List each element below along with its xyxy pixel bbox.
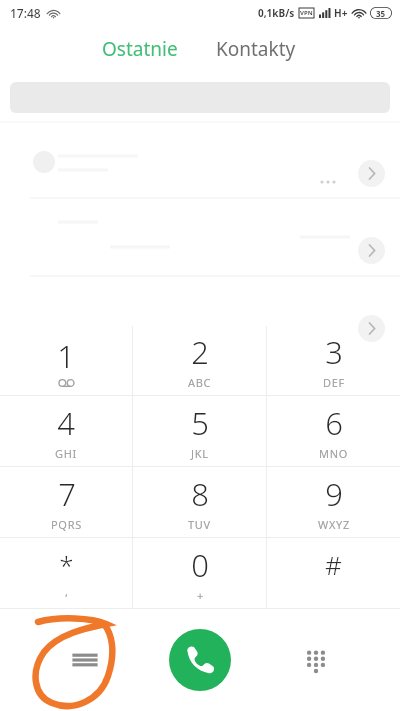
staticText: GHI — [55, 446, 77, 461]
staticText: DEF — [323, 375, 345, 390]
staticText: Ostatnie — [102, 36, 178, 62]
button[interactable]: 4 — [0, 396, 132, 466]
button[interactable]: # — [267, 538, 400, 608]
button[interactable]: Ostatnie — [96, 30, 184, 68]
staticText: 1 — [57, 335, 75, 377]
staticText: # — [325, 547, 342, 582]
staticText: 0 — [191, 544, 209, 586]
button[interactable]: 8 — [133, 467, 266, 537]
staticText: TUV — [188, 517, 211, 532]
button[interactable]: Call — [169, 629, 231, 691]
button[interactable]: Keypad — [288, 632, 344, 688]
staticText: * — [59, 547, 74, 582]
staticText: WXYZ — [318, 517, 350, 532]
staticText: 5 — [191, 402, 209, 444]
button[interactable]: 1 — [0, 326, 132, 395]
button[interactable]: Open — [358, 315, 385, 342]
button[interactable]: 2 — [133, 326, 266, 395]
staticText: 4 — [57, 402, 75, 444]
button[interactable]: 9 — [267, 467, 400, 537]
staticText: 35 — [376, 8, 386, 19]
staticText: 9 — [325, 473, 343, 515]
button[interactable]: 3 — [267, 326, 400, 395]
staticText: 7 — [58, 473, 76, 515]
button[interactable]: 5 — [133, 396, 266, 466]
staticText: JKL — [191, 446, 209, 461]
staticText: VPN — [300, 9, 313, 17]
staticText: MNO — [319, 446, 349, 461]
staticText: H+ — [334, 6, 348, 20]
button[interactable]: Open — [358, 160, 385, 187]
staticText: + — [197, 588, 204, 603]
button[interactable]: Open — [358, 237, 385, 264]
button[interactable]: Menu — [57, 632, 113, 688]
button[interactable]: * — [0, 538, 132, 608]
button[interactable]: 0 — [133, 538, 266, 608]
staticText: 2 — [191, 331, 209, 373]
staticText: 6 — [325, 402, 343, 444]
staticText: Kontakty — [216, 36, 296, 62]
staticText: PQRS — [51, 517, 82, 532]
button[interactable]: 6 — [267, 396, 400, 466]
button[interactable]: 7 — [0, 467, 132, 537]
staticText: ABC — [188, 375, 212, 390]
staticText: , — [65, 584, 69, 599]
staticText: 8 — [191, 473, 209, 515]
staticText: 3 — [325, 331, 343, 373]
staticText: 17:48 — [10, 5, 41, 21]
staticText: 0,1kB/s — [258, 6, 295, 20]
button[interactable]: Kontakty — [210, 30, 302, 68]
